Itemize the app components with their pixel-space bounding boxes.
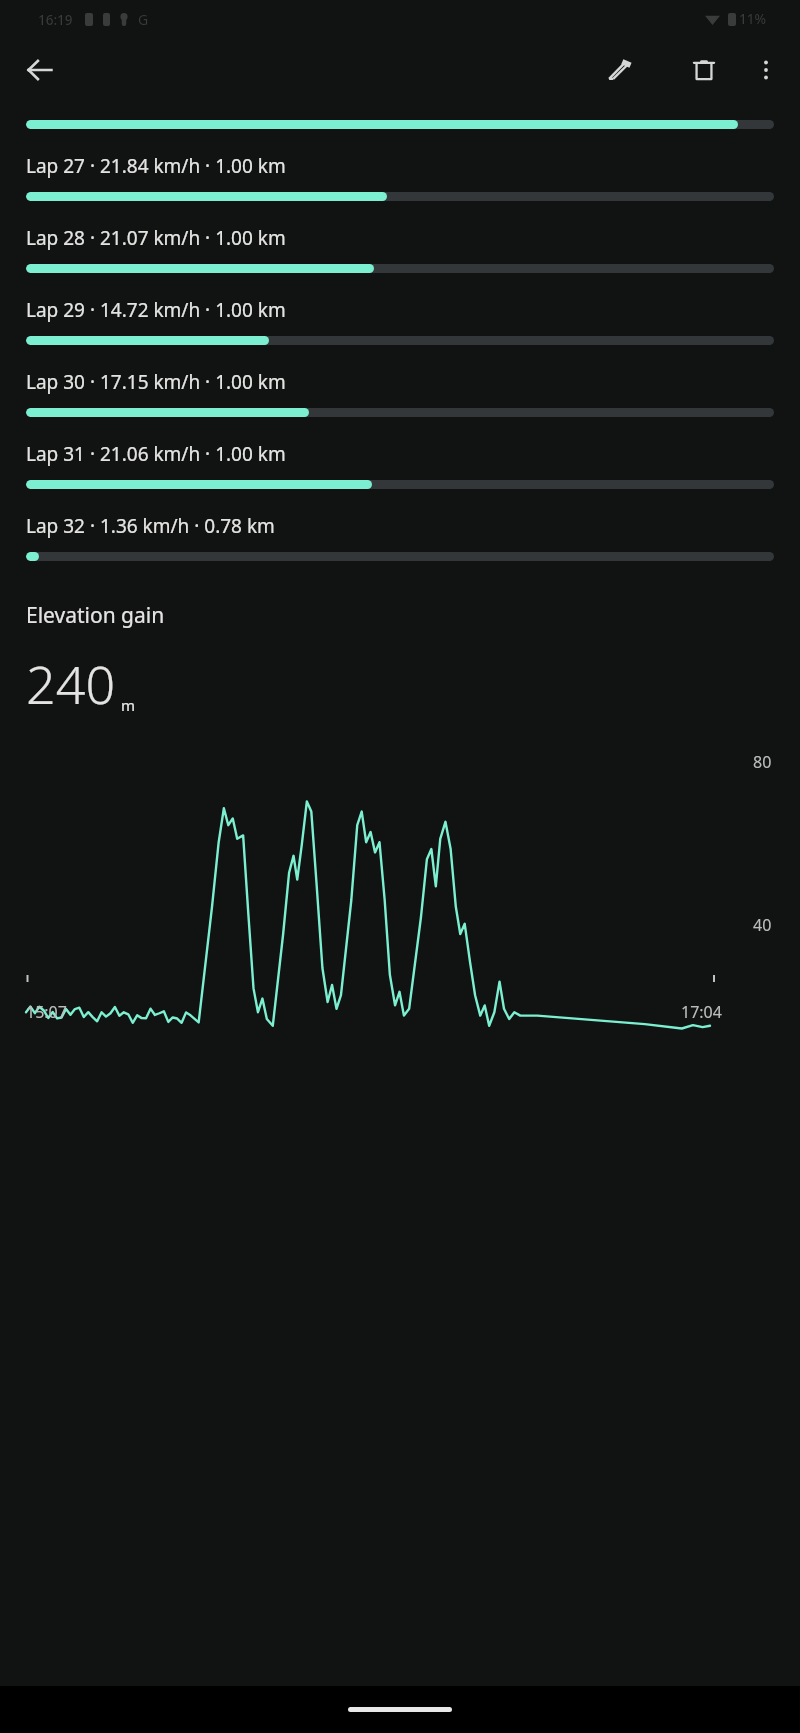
staticText: Lap 28 · 21.07 km/h · 1.00 km [26, 225, 286, 251]
button[interactable]: Lap 29 · 14.72 km/h · 1.00 km [0, 297, 800, 345]
staticText: 240 [26, 648, 116, 719]
button[interactable]: Lap 32 · 1.36 km/h · 0.78 km [0, 513, 800, 561]
staticText: G [138, 10, 149, 29]
button[interactable]: More options [742, 46, 790, 94]
staticText: 15:07 [26, 1001, 67, 1023]
button[interactable]: Back [16, 46, 64, 94]
button[interactable]: Lap 31 · 21.06 km/h · 1.00 km [0, 441, 800, 489]
staticText: 17:04 [681, 1001, 722, 1023]
button[interactable]: Lap 30 · 17.15 km/h · 1.00 km [0, 369, 800, 417]
staticText: 80 [753, 751, 772, 773]
staticText: Lap 32 · 1.36 km/h · 0.78 km [26, 513, 275, 539]
button[interactable]: Edit [594, 46, 642, 94]
staticText: Lap 29 · 14.72 km/h · 1.00 km [26, 297, 286, 323]
staticText: Elevation gain [26, 601, 165, 630]
staticText: 40 [753, 914, 772, 936]
staticText: m [121, 695, 136, 715]
staticText: 11% [739, 10, 766, 28]
button[interactable]: Delete [680, 46, 728, 94]
button[interactable]: Lap 28 · 21.07 km/h · 1.00 km [0, 225, 800, 273]
staticText: Lap 30 · 17.15 km/h · 1.00 km [26, 369, 286, 395]
staticText: 16:19 [38, 11, 73, 29]
staticText: Lap 27 · 21.84 km/h · 1.00 km [26, 153, 286, 179]
staticText: Lap 31 · 21.06 km/h · 1.00 km [26, 441, 286, 467]
button[interactable]: Lap 27 · 21.84 km/h · 1.00 km [0, 153, 800, 201]
